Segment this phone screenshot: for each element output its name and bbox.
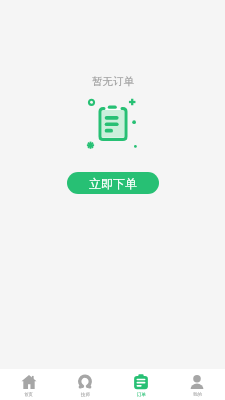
staticText: 暂无订单 — [92, 75, 134, 88]
staticText: 我的 — [193, 392, 202, 398]
other: 我的 — [189, 374, 205, 390]
staticText: 技师 — [81, 392, 90, 398]
button[interactable]: 订单 — [113, 369, 169, 400]
other: 订单 — [133, 374, 149, 390]
staticText: 首页 — [24, 392, 33, 398]
other: 首页 — [21, 374, 37, 390]
other: 技师 — [77, 374, 93, 390]
staticText: 立即下单 — [89, 176, 137, 191]
button[interactable]: 我的 — [169, 369, 225, 400]
button[interactable]: 首页 — [0, 369, 57, 400]
button[interactable]: 立即下单 — [67, 172, 159, 194]
staticText: 订单 — [137, 392, 146, 398]
button[interactable]: 技师 — [57, 369, 113, 400]
